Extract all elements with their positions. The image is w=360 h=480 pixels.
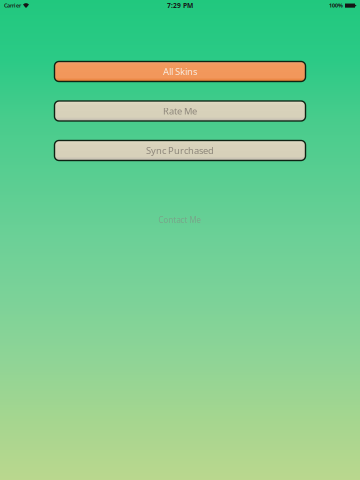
button[interactable]: Contact Me: [158, 214, 201, 225]
button[interactable]: All Skins: [54, 61, 305, 81]
staticText: Sync Purchased: [146, 144, 214, 157]
staticText: Contact Me: [158, 214, 201, 225]
staticText: Carrier: [4, 2, 21, 9]
staticText: Rate Me: [163, 105, 197, 117]
staticText: 100%: [329, 2, 343, 9]
button[interactable]: Rate Me: [54, 101, 305, 121]
button[interactable]: Sync Purchased: [54, 140, 305, 160]
staticText: All Skins: [163, 65, 197, 78]
staticText: 7:29 PM: [167, 1, 193, 10]
